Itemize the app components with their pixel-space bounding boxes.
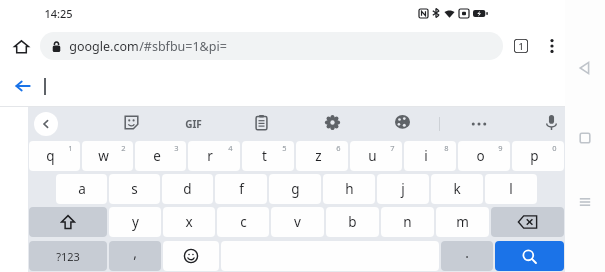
staticText: i [424,147,428,165]
button[interactable]: ?123 [29,241,107,271]
staticText: b [348,213,357,231]
button[interactable]: s [109,174,160,204]
button[interactable]: i [404,141,456,171]
button[interactable]: v [271,207,324,237]
button[interactable]: . [441,241,493,271]
button[interactable]: b [326,207,379,237]
button[interactable]: More options [464,109,494,139]
button[interactable]: o [458,141,510,171]
button[interactable]: y [109,207,161,237]
staticText: f [239,180,244,198]
button[interactable]: Customize and control Chrome [539,33,565,59]
button[interactable]: l [485,174,537,204]
button[interactable]: Back [34,112,58,136]
staticText: s [131,180,138,198]
staticText: 1 [68,143,73,153]
staticText: 1 [518,40,524,52]
button[interactable]: Home [575,128,595,148]
staticText: y [132,213,139,231]
staticText: n [403,213,412,231]
button[interactable]: g [269,174,321,204]
staticText: 5 [282,143,287,153]
staticText: h [345,180,354,198]
button[interactable]: z [296,141,348,171]
button[interactable]: Shift [29,207,107,237]
button[interactable]: Backspace [491,207,564,237]
staticText: , [133,244,137,262]
staticText: GIF [185,117,202,131]
staticText: o [476,147,485,165]
staticText: 0 [552,143,557,153]
button[interactable]: google.com [40,32,503,60]
staticText: z [315,147,322,165]
staticText: ?123 [56,249,80,264]
staticText: g [291,180,300,198]
staticText: a [78,180,86,198]
button[interactable]: n [381,207,434,237]
staticText: p [530,147,539,165]
button[interactable]: a [56,174,107,204]
button[interactable]: Back [575,58,595,78]
staticText: d [183,180,192,198]
staticText: m [456,213,469,231]
staticText: 14:25 [44,6,73,21]
button[interactable]: t [242,141,294,171]
button[interactable]: Switch tabs, 1 tab [508,33,534,59]
staticText: 6 [336,143,341,153]
staticText: . [465,244,469,262]
staticText: q [46,147,55,165]
button[interactable]: j [377,174,429,204]
staticText: j [401,180,405,198]
button[interactable]: u [350,141,402,171]
staticText: t [262,147,267,165]
button[interactable]: Stickers [116,107,146,137]
button[interactable]: , [109,241,161,271]
button[interactable]: Voice input [537,107,565,137]
button[interactable]: d [162,174,213,204]
staticText: x [185,213,193,231]
staticText: v [294,213,301,231]
button[interactable]: r [188,141,240,171]
button[interactable]: Emoji [163,241,219,271]
staticText: r [207,147,213,165]
staticText: 2 [121,143,126,153]
button[interactable]: f [215,174,267,204]
staticText: /#sbfbu=1&pi= [139,38,227,55]
button[interactable]: Search [495,241,564,271]
button[interactable]: e [135,141,186,171]
button[interactable]: k [431,174,483,204]
staticText: e [153,147,161,165]
staticText: 9 [498,143,503,153]
staticText: 8 [444,143,449,153]
staticText: u [368,147,377,165]
button[interactable]: Clipboard [246,107,276,137]
button[interactable]: q [29,141,80,171]
button[interactable]: p [512,141,564,171]
button[interactable]: Settings [317,107,347,137]
staticText: w [98,147,109,165]
staticText: 7 [390,143,395,153]
staticText: google.com [69,38,139,55]
staticText: 3 [174,143,179,153]
button[interactable]: x [163,207,215,237]
button[interactable]: Recent apps [575,192,595,212]
button[interactable]: h [323,174,375,204]
button[interactable]: c [217,207,269,237]
staticText: c [240,213,247,231]
button[interactable]: w [82,141,133,171]
button[interactable]: GIF [176,111,210,137]
staticText: l [509,180,513,198]
staticText: 4 [228,143,233,153]
button[interactable]: Back [10,73,36,99]
button[interactable]: Home page [8,33,34,59]
button[interactable]: Themes [387,107,417,137]
button[interactable]: m [436,207,489,237]
staticText: k [453,180,461,198]
